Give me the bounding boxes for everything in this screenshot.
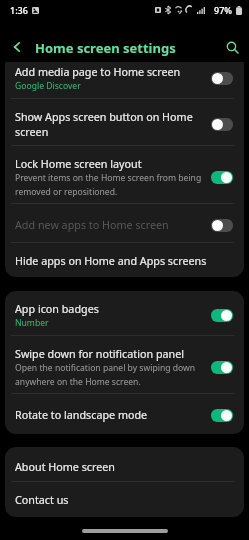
staticText: Google Discover [15,80,81,92]
staticText: Rotate to landscape mode [15,408,148,423]
staticText: Open the notification panel by swiping d… [15,362,204,387]
button[interactable]: Off [211,219,233,232]
staticText: About Home screen [15,460,115,475]
button[interactable]: Add new apps to Home screen [5,204,244,242]
staticText: Number [15,317,49,329]
staticText: Add new apps to Home screen [15,218,169,233]
button[interactable]: Hide apps on Home and Apps screens [5,243,244,277]
button[interactable]: Contact us [5,482,244,517]
button[interactable]: On [211,409,233,422]
button[interactable]: On [211,171,233,184]
staticText: Contact us [15,493,69,508]
staticText: 97% [214,4,232,16]
button[interactable]: Search [219,34,245,60]
button[interactable]: Off [211,118,233,131]
staticText: Home screen settings [35,39,176,57]
button[interactable]: Add media page to Home screen [5,62,244,98]
button[interactable]: Swipe down for notification panel [5,336,244,393]
button[interactable]: App icon badges [5,291,244,335]
button[interactable]: Off [211,72,233,85]
staticText: App icon badges [15,302,99,317]
staticText: Prevent items on the Home screen from be… [15,172,204,197]
staticText: Add media page to Home screen [15,65,181,80]
staticText: Lock Home screen layout [15,157,142,172]
staticText: 1:36 [10,4,28,16]
button[interactable]: Show Apps screen button on Home screen [5,99,244,145]
button[interactable]: Lock Home screen layout [5,146,244,203]
button[interactable]: About Home screen [5,447,244,481]
staticText: Swipe down for notification panel [15,347,185,362]
button[interactable]: On [211,309,233,322]
staticText: Show Apps screen button on Home screen [15,110,204,139]
staticText: Hide apps on Home and Apps screens [15,254,207,269]
button[interactable]: Rotate to landscape mode [5,394,244,434]
button[interactable]: Navigate up [4,34,30,60]
button[interactable]: On [211,361,233,374]
